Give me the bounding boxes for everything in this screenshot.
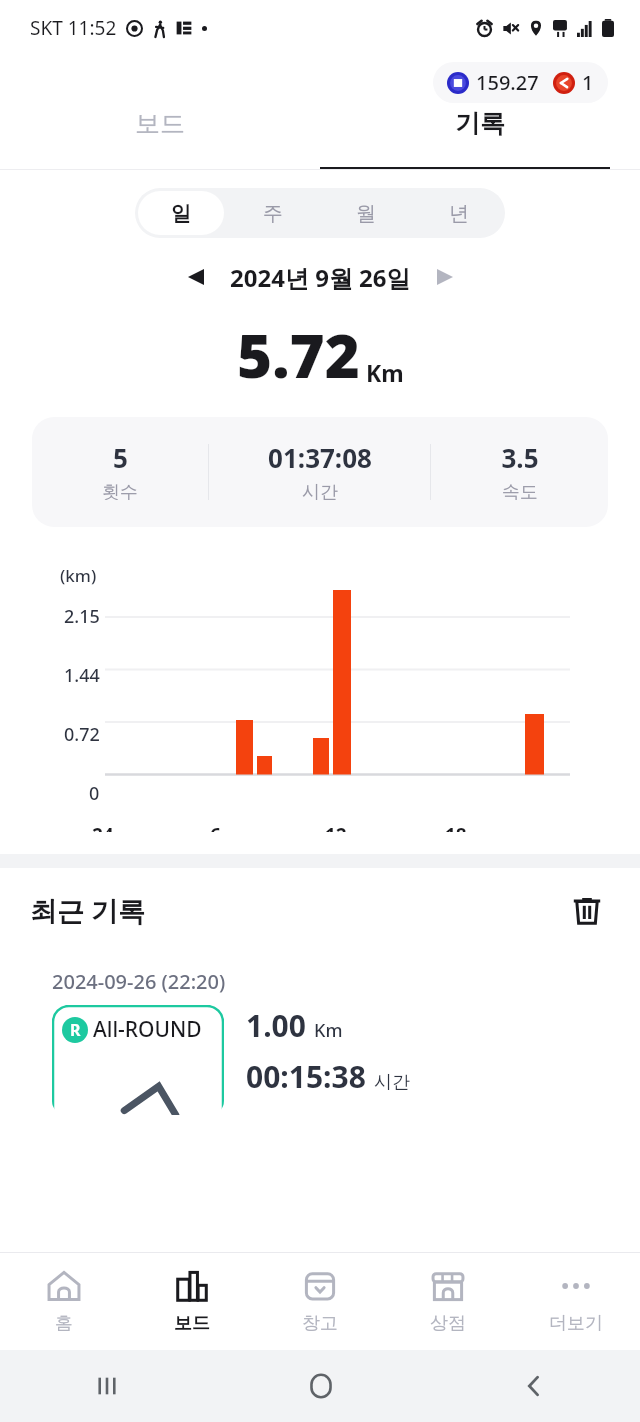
staticText: 보드 [174,1312,210,1335]
staticText: 2024-09-26 (22:20) [52,968,226,995]
button[interactable]: 5 [32,417,608,527]
staticText: 년 [449,201,469,226]
button[interactable]: Delete records [564,887,610,933]
button[interactable]: 년 [415,191,502,235]
staticText: 속도 [502,481,538,504]
button[interactable]: Previous day [176,257,216,297]
button[interactable]: 창고 [256,1253,384,1350]
staticText: 창고 [302,1312,338,1335]
staticText: 상점 [430,1312,466,1335]
staticText: 1.44 [64,663,100,688]
button[interactable]: 기록 [320,108,640,139]
staticText: 18 [445,822,467,832]
staticText: Km [314,1018,343,1043]
staticText: 2024년 9월 26일 [230,261,411,294]
staticText: R [70,1019,81,1041]
staticText: 6 [210,822,221,832]
button[interactable]: 159.27 [433,62,608,103]
button[interactable]: 상점 [384,1253,512,1350]
staticText: 시간 [302,481,338,504]
staticText: 5.72 [237,314,360,396]
staticText: 0.72 [64,722,100,747]
button[interactable]: 주 [230,191,316,235]
staticText: 1.00 [246,1005,306,1046]
button[interactable]: 월 [322,191,409,235]
staticText: 5 [113,440,128,475]
staticText: 2.15 [64,604,100,629]
staticText: 더보기 [549,1312,603,1335]
staticText: SKT 11:52 [30,15,117,41]
staticText: (km) [60,564,97,587]
button[interactable]: Next day [425,257,465,297]
staticText: 12 [325,822,347,832]
staticText: 일 [171,201,191,226]
staticText: 01:37:08 [268,440,372,475]
staticText: 보드 [135,108,185,139]
staticText: 시간 [374,1071,410,1094]
button[interactable]: 일 [138,191,224,235]
staticText: 24 [92,822,114,832]
button[interactable]: 보드 [0,108,320,139]
button[interactable]: 홈 [0,1253,128,1350]
staticText: 0 [89,781,100,806]
staticText: 1 [582,69,594,96]
staticText: Km [366,357,404,388]
button[interactable]: 보드 [128,1253,256,1350]
staticText: 159.27 [476,69,539,96]
staticText: 홈 [55,1312,73,1335]
button[interactable]: 더보기 [512,1253,640,1350]
staticText: 최근 기록 [30,892,146,929]
staticText: 횟수 [102,481,138,504]
staticText: 주 [263,201,283,226]
staticText: All-ROUND [93,1015,202,1044]
staticText: 기록 [455,108,505,139]
staticText: 3.5 [501,440,539,475]
staticText: 00:15:38 [246,1056,366,1097]
button[interactable]: 2024-09-26 (22:20) [32,952,608,1115]
staticText: 월 [356,201,376,226]
